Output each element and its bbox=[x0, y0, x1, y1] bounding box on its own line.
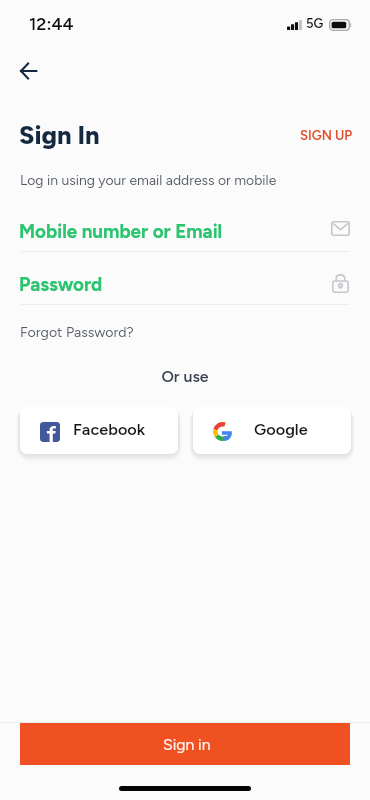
staticText: Or use bbox=[0, 367, 370, 386]
staticText: Log in using your email address or mobil… bbox=[20, 172, 277, 189]
button[interactable]: Google bbox=[193, 407, 351, 454]
button[interactable]: Back bbox=[6, 57, 50, 85]
staticText: 5G bbox=[306, 16, 324, 32]
staticText: Password bbox=[19, 273, 103, 296]
staticText: 12:44 bbox=[29, 13, 74, 34]
staticText: SIGN UP bbox=[300, 127, 353, 143]
button[interactable]: Sign in bbox=[20, 723, 350, 765]
staticText: Sign In bbox=[19, 120, 100, 151]
button[interactable]: Forgot Password? bbox=[16, 320, 136, 344]
staticText: Facebook bbox=[73, 420, 146, 440]
staticText: Forgot Password? bbox=[20, 324, 134, 341]
button[interactable]: SIGN UP bbox=[293, 123, 359, 147]
button[interactable]: Facebook bbox=[20, 407, 178, 454]
staticText: Mobile number or Email bbox=[19, 220, 223, 243]
staticText: Google bbox=[254, 420, 308, 440]
staticText: Sign in bbox=[163, 735, 211, 754]
